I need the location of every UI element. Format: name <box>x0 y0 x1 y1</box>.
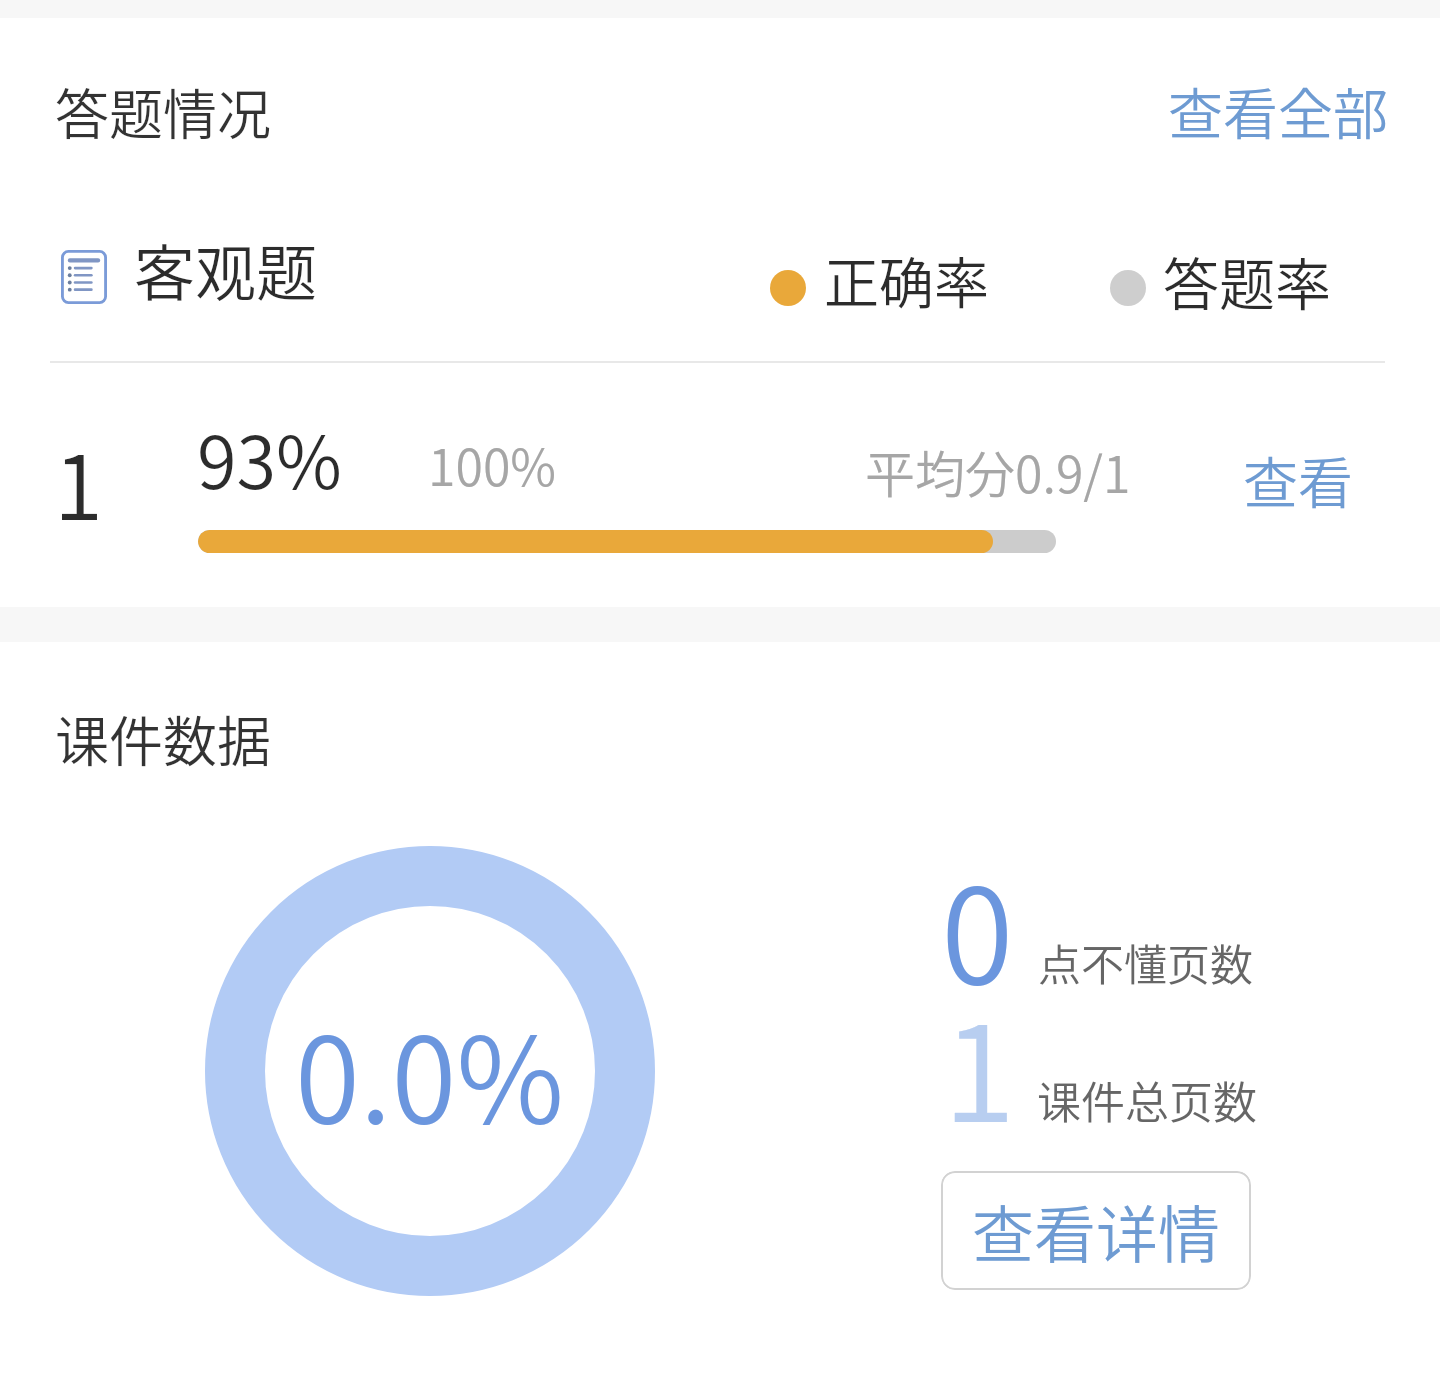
button[interactable]: 正确率 <box>756 232 1004 316</box>
staticText: 0 <box>941 831 1014 1022</box>
button[interactable]: 客观题 <box>40 220 360 330</box>
staticText: 答题情况 <box>55 72 271 150</box>
other: 客观题 <box>61 250 107 304</box>
button[interactable]: 查看详情 <box>941 1171 1251 1290</box>
staticText: 100% <box>428 428 557 500</box>
staticText: 客观题 <box>134 225 318 313</box>
staticText: 正确率 <box>824 239 990 319</box>
staticText: 查看 <box>1243 439 1354 519</box>
other: 课件完成度 0.0% <box>205 846 655 1296</box>
staticText: 查看详情 <box>972 1186 1221 1276</box>
staticText: 平均分0.9/1 <box>865 435 1131 507</box>
button[interactable]: 答题率 <box>1096 232 1344 316</box>
staticText: 答题率 <box>1163 240 1331 321</box>
button[interactable]: 查看全部 <box>1146 58 1410 162</box>
staticText: 点不懂页数 <box>1038 931 1253 993</box>
button[interactable]: 答题情况 <box>30 71 290 171</box>
button[interactable]: 查看 <box>1218 421 1378 537</box>
staticText: 1 <box>943 969 1016 1160</box>
staticText: 课件总页数 <box>1037 1068 1257 1132</box>
staticText: 93% <box>197 405 342 509</box>
staticText: 查看全部 <box>1168 70 1389 150</box>
staticText: 0.0% <box>295 986 565 1157</box>
staticText: 课件数据 <box>55 699 271 777</box>
staticText: 1 <box>54 417 103 546</box>
button[interactable]: 课件数据 <box>30 698 290 798</box>
